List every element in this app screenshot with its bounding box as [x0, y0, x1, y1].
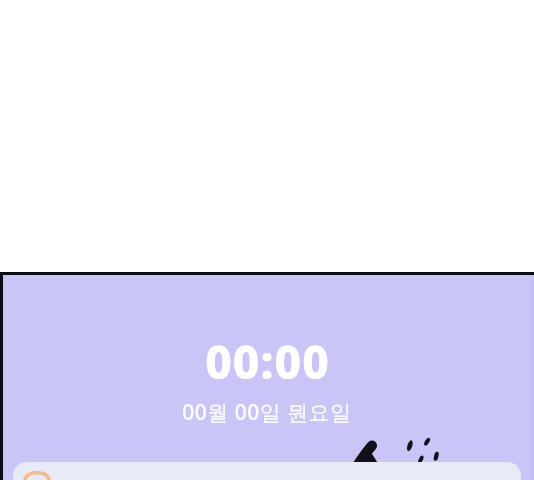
- other: Decoration: [346, 436, 442, 480]
- staticText: 00월 00일 뭔요일: [182, 398, 352, 427]
- button[interactable]: [13, 462, 521, 480]
- staticText: 00:00: [205, 330, 330, 393]
- button[interactable]: 00:00: [0, 330, 534, 427]
